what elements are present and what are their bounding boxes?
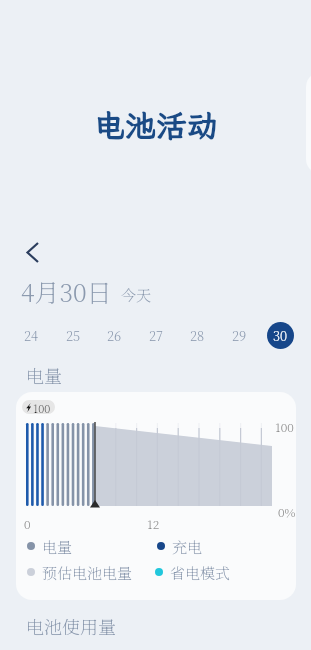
staticText: 今天 — [121, 284, 152, 306]
staticText: 30 — [273, 326, 288, 345]
staticText: 充电 — [172, 536, 203, 556]
staticText: 电量 — [42, 536, 73, 556]
button[interactable]: 省电模式 — [155, 562, 231, 582]
staticText: 26 — [107, 326, 122, 345]
button[interactable]: 充电 — [157, 536, 203, 556]
button[interactable]: 28 — [184, 322, 211, 349]
button[interactable]: 26 — [101, 322, 128, 349]
staticText: 100 — [275, 418, 294, 435]
button[interactable]: Back — [16, 236, 48, 268]
staticText: 24 — [24, 326, 39, 345]
staticText: 25 — [66, 326, 81, 345]
staticText: 预估电池电量 — [42, 562, 133, 582]
staticText: 28 — [190, 326, 205, 345]
button[interactable]: 电量 — [27, 536, 73, 556]
staticText: 0 — [24, 515, 31, 532]
staticText: 4月30日 — [21, 273, 112, 309]
staticText: 100 — [33, 400, 51, 414]
staticText: 29 — [232, 326, 247, 345]
button[interactable]: 24 — [18, 322, 45, 349]
staticText: 0% — [278, 503, 296, 520]
staticText: 27 — [149, 326, 164, 345]
staticText: 电池使用量 — [26, 613, 116, 639]
button[interactable]: 30 — [267, 322, 294, 349]
button[interactable]: 29 — [226, 322, 253, 349]
staticText: 12 — [147, 515, 160, 532]
staticText: 电量 — [26, 362, 62, 388]
button[interactable]: 25 — [60, 322, 87, 349]
button[interactable]: 预估电池电量 — [27, 562, 133, 582]
staticText: 电池活动 — [94, 105, 218, 146]
staticText: 省电模式 — [170, 562, 231, 582]
button[interactable]: 27 — [143, 322, 170, 349]
